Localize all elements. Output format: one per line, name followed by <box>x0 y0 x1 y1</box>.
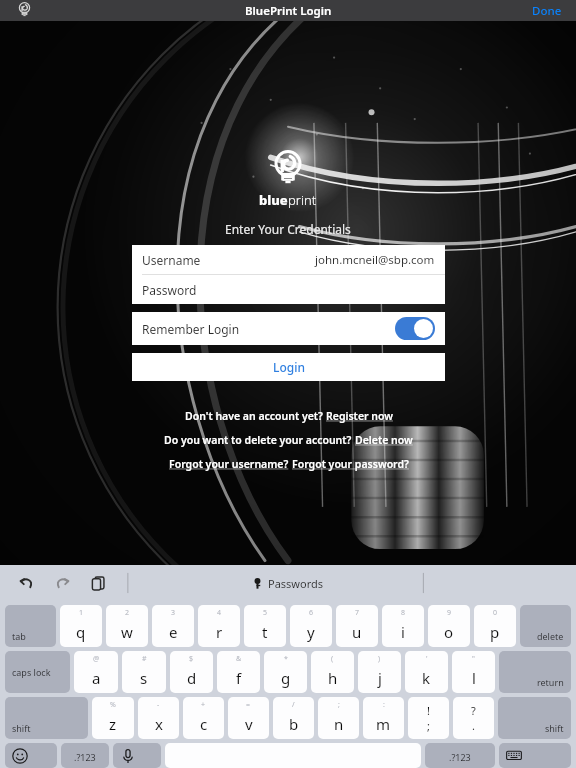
button[interactable]: 2 <box>106 605 148 647</box>
button[interactable]: 5 <box>244 605 286 647</box>
button[interactable]: tab <box>5 605 56 647</box>
staticText: Done <box>532 3 562 18</box>
button[interactable]: 9 <box>428 605 470 647</box>
staticText: Login <box>273 359 305 375</box>
button[interactable]: return <box>499 651 571 693</box>
staticText: f <box>236 668 242 688</box>
staticText: Enter Your Credentials <box>225 221 351 237</box>
button[interactable]: @ <box>74 651 118 693</box>
button[interactable]: 1 <box>60 605 102 647</box>
staticText: j <box>378 668 382 688</box>
button[interactable]: " <box>452 651 495 693</box>
button[interactable]: Register now <box>326 409 393 423</box>
staticText: " <box>472 654 475 664</box>
button[interactable]: 6 <box>290 605 332 647</box>
staticText: w <box>121 622 133 642</box>
staticText: p <box>490 622 500 642</box>
staticText: ) <box>378 654 381 664</box>
staticText: john.mcneil@sbp.com <box>315 252 435 268</box>
button[interactable]: caps lock <box>5 651 70 693</box>
staticText: * <box>284 654 288 664</box>
staticText: Delete now <box>355 433 413 447</box>
button[interactable]: .?123 <box>61 743 109 768</box>
staticText: - <box>157 700 160 710</box>
staticText: 5 <box>263 608 268 618</box>
staticText: l <box>472 668 476 688</box>
button[interactable]: ( <box>311 651 354 693</box>
staticText: u <box>352 622 362 642</box>
button[interactable]: shift <box>5 697 88 739</box>
staticText: 0 <box>493 608 498 618</box>
staticText: shift <box>12 722 31 734</box>
button[interactable]: Password <box>132 275 445 304</box>
button[interactable]: # <box>122 651 166 693</box>
button[interactable]: Undo <box>14 571 38 595</box>
button[interactable]: : <box>363 697 404 739</box>
button[interactable]: ) <box>358 651 401 693</box>
button[interactable]: ? <box>453 697 494 739</box>
button[interactable]: shift <box>498 697 571 739</box>
button[interactable]: = <box>228 697 269 739</box>
button[interactable]: Paste <box>86 571 110 595</box>
button[interactable]: Login <box>132 353 445 381</box>
button[interactable]: Forgot your username? <box>169 457 289 471</box>
button[interactable]: ; <box>318 697 359 739</box>
staticText: tab <box>12 630 26 642</box>
staticText: % <box>110 700 116 710</box>
staticText: Remember Login <box>142 321 240 337</box>
staticText: / <box>292 700 295 710</box>
button[interactable]: / <box>273 697 314 739</box>
button[interactable]: & <box>217 651 260 693</box>
staticText: g <box>281 668 291 688</box>
button[interactable]: * <box>264 651 307 693</box>
button[interactable]: ' <box>405 651 448 693</box>
staticText: @ <box>93 654 100 664</box>
button[interactable]: delete <box>520 605 571 647</box>
staticText: # <box>142 654 147 664</box>
staticText: & <box>236 654 242 664</box>
button[interactable]: - <box>138 697 179 739</box>
staticText: Passwords <box>268 576 324 591</box>
staticText: 7 <box>355 608 360 618</box>
button[interactable]: Hide keyboard <box>499 743 571 768</box>
button[interactable]: Dictation <box>113 743 161 768</box>
button[interactable]: 7 <box>336 605 378 647</box>
staticText: ( <box>331 654 334 664</box>
button[interactable]: Emoji <box>5 743 57 768</box>
staticText: o <box>444 622 454 642</box>
button[interactable]: Remember Login toggle, on <box>395 317 435 340</box>
staticText: Password <box>142 282 197 298</box>
button[interactable]: 4 <box>198 605 240 647</box>
button[interactable]: .?123 <box>425 743 495 768</box>
staticText: d <box>187 668 197 688</box>
button[interactable]: Done <box>518 0 576 21</box>
staticText: ' <box>426 654 428 664</box>
button[interactable]: Forgot your password? <box>292 457 409 471</box>
button[interactable]: 0 <box>474 605 516 647</box>
button[interactable]: % <box>92 697 134 739</box>
staticText: Forgot your username? <box>169 457 289 471</box>
staticText: x <box>155 714 163 734</box>
staticText: .?123 <box>449 751 471 763</box>
staticText: Username <box>142 252 201 268</box>
staticText: blue <box>259 191 288 209</box>
staticText: return <box>537 676 564 688</box>
staticText: c <box>200 714 208 734</box>
staticText: 9 <box>447 608 452 618</box>
staticText: 6 <box>309 608 314 618</box>
button[interactable]: Remember Login <box>132 312 445 345</box>
button[interactable]: Username <box>132 245 445 274</box>
button[interactable]: Passwords <box>248 572 328 595</box>
button[interactable]: + <box>183 697 224 739</box>
button[interactable]: Delete now <box>355 433 413 447</box>
staticText: . <box>472 718 475 733</box>
staticText: z <box>109 714 117 734</box>
button[interactable]: ! <box>408 697 449 739</box>
button[interactable]: Redo <box>50 571 74 595</box>
button[interactable]: $ <box>170 651 213 693</box>
staticText: Register now <box>326 409 393 423</box>
button[interactable]: 8 <box>382 605 424 647</box>
button[interactable]: 3 <box>152 605 194 647</box>
staticText: delete <box>537 630 564 642</box>
